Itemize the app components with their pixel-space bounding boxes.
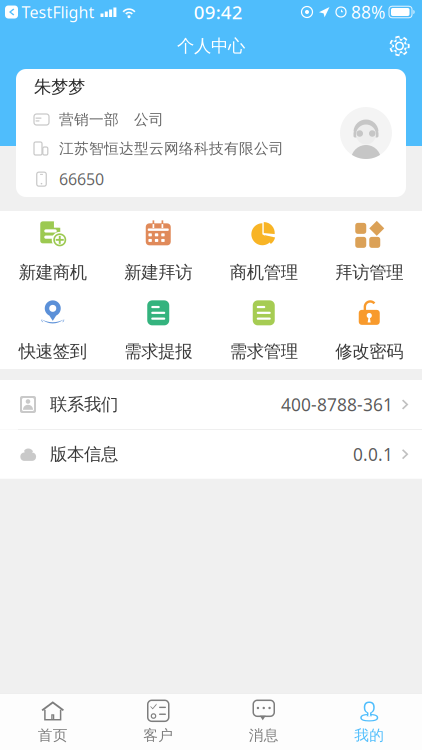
button[interactable]: 需求提报 [105, 290, 211, 369]
staticText: 0.0.1 [353, 443, 393, 466]
button[interactable]: 商机管理 [211, 211, 316, 290]
staticText: 联系我们 [50, 394, 118, 415]
button[interactable]: Back to TestFlight [0, 1, 94, 23]
staticText: 商机管理 [230, 262, 298, 283]
button[interactable]: 消息 [211, 693, 316, 750]
staticText: TestFlight [21, 1, 94, 23]
staticText: 营销一部 公司 [59, 110, 164, 128]
staticText: 首页 [38, 726, 68, 744]
staticText: 朱梦梦 [34, 76, 85, 97]
staticText: 版本信息 [50, 444, 118, 465]
staticText: 修改密码 [335, 341, 403, 362]
button[interactable]: 需求管理 [211, 290, 316, 369]
staticText: 个人中心 [177, 35, 245, 57]
button[interactable]: 我的 [316, 693, 422, 750]
button[interactable]: 客户 [105, 693, 211, 750]
button[interactable]: 修改密码 [316, 290, 422, 369]
staticText: 需求管理 [230, 341, 298, 362]
button[interactable]: 新建商机 [0, 211, 105, 290]
button[interactable]: 快速签到 [0, 290, 105, 369]
staticText: 需求提报 [124, 341, 192, 362]
staticText: 拜访管理 [335, 262, 403, 283]
button[interactable]: 版本信息 [0, 430, 422, 479]
button[interactable]: Settings [377, 25, 422, 66]
button[interactable]: 联系我们 [0, 380, 422, 429]
staticText: 400-8788-361 [281, 393, 393, 416]
button[interactable]: 拜访管理 [316, 211, 422, 290]
staticText: 88% [351, 0, 385, 23]
staticText: 66650 [59, 168, 104, 190]
button[interactable]: 新建拜访 [105, 211, 211, 290]
staticText: 消息 [249, 726, 279, 744]
staticText: 客户 [143, 726, 173, 744]
staticText: 快速签到 [19, 341, 87, 362]
staticText: 新建商机 [19, 262, 87, 283]
staticText: 09:42 [194, 0, 243, 24]
staticText: 我的 [354, 726, 384, 744]
staticText: 江苏智恒达型云网络科技有限公司 [59, 139, 284, 157]
button[interactable]: 首页 [0, 693, 105, 750]
staticText: 新建拜访 [124, 262, 192, 283]
